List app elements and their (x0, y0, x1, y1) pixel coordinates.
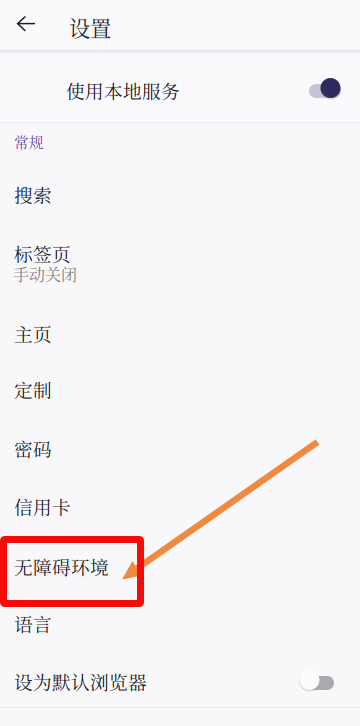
staticText: 定制 (14, 376, 52, 403)
staticText: 主页 (14, 320, 52, 347)
staticText: 信用卡 (14, 493, 71, 520)
staticText: 无障碍环境 (14, 553, 109, 580)
staticText: 语言 (14, 610, 52, 637)
button[interactable]: 标签页 (0, 234, 360, 292)
button[interactable]: 设为默认浏览器 (0, 655, 360, 707)
staticText: 密码 (14, 435, 52, 462)
button[interactable]: 使用本地服务 (0, 55, 360, 122)
staticText: 搜索 (14, 181, 52, 208)
staticText: 设为默认浏览器 (14, 668, 147, 695)
button[interactable]: 信用卡 (0, 487, 360, 537)
button[interactable]: 密码 (0, 429, 360, 479)
staticText: 手动关闭 (13, 262, 77, 285)
staticText: 常规 (14, 131, 44, 152)
button[interactable]: 主页 (0, 314, 360, 364)
staticText: 使用本地服务 (66, 77, 180, 104)
button[interactable]: 搜索 (0, 175, 360, 225)
button[interactable]: 无障碍环境 (0, 547, 360, 597)
staticText: 标签页 (14, 240, 71, 267)
button[interactable]: 语言 (0, 604, 360, 654)
button[interactable]: 定制 (0, 370, 360, 420)
staticText: 设置 (69, 12, 111, 43)
button[interactable]: 返回 (4, 1, 48, 47)
